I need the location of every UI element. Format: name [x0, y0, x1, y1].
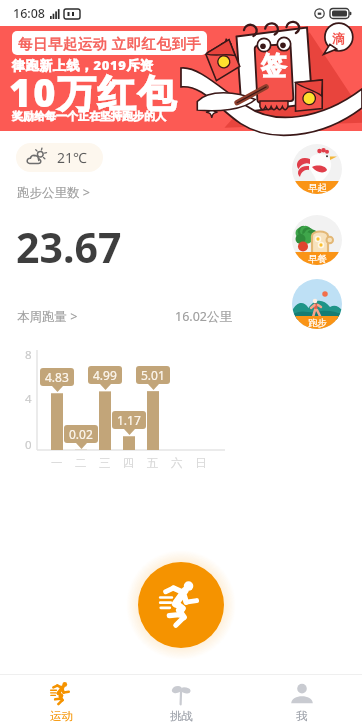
- staticText: 0.02: [69, 426, 93, 442]
- staticText: 8: [25, 347, 32, 363]
- staticText: 签: [261, 50, 286, 81]
- staticText: 23.67: [16, 219, 122, 275]
- staticText: 四: [123, 456, 135, 470]
- button[interactable]: 开始跑步: [138, 562, 224, 648]
- staticText: 0: [25, 437, 32, 453]
- staticText: 五: [147, 456, 159, 470]
- staticText: 奖励给每一个正在坚持跑步的人: [12, 109, 166, 123]
- staticText: 我: [296, 709, 308, 723]
- button[interactable]: 早起: [292, 144, 342, 194]
- button[interactable]: 我: [242, 675, 362, 728]
- staticText: 4.83: [45, 369, 69, 385]
- staticText: 21℃: [57, 148, 87, 167]
- staticText: 一: [51, 456, 63, 470]
- staticText: 跑步: [308, 317, 327, 329]
- staticText: 二: [75, 456, 87, 470]
- staticText: 运动: [50, 709, 73, 723]
- staticText: 1.17: [117, 412, 141, 428]
- staticText: 16:08: [13, 5, 46, 22]
- button[interactable]: 21℃: [16, 143, 103, 172]
- staticText: 4: [25, 391, 32, 407]
- staticText: 4.99: [93, 367, 117, 383]
- staticText: 10万红包: [9, 66, 178, 118]
- staticText: 早起: [308, 182, 327, 194]
- button[interactable]: 挑战: [121, 675, 241, 728]
- staticText: 每日早起运动 立即红包到手: [18, 33, 201, 53]
- staticText: 日: [195, 456, 207, 470]
- staticText: 滴: [332, 31, 345, 47]
- staticText: 5.01: [141, 367, 165, 383]
- staticText: 早餐: [308, 253, 327, 265]
- staticText: 本周跑量 >: [17, 308, 78, 325]
- staticText: 律跑新上线，2019斥资: [12, 56, 154, 74]
- button[interactable]: 每日早起运动 立即红包到手: [0, 26, 362, 131]
- staticText: 16.02公里: [175, 308, 232, 325]
- button[interactable]: 跑步: [292, 279, 342, 329]
- button[interactable]: 早餐: [292, 215, 342, 265]
- staticText: 跑步公里数 >: [17, 184, 90, 201]
- staticText: 三: [99, 456, 111, 470]
- staticText: 挑战: [170, 709, 193, 723]
- staticText: 六: [171, 456, 183, 470]
- button[interactable]: 运动: [1, 675, 121, 728]
